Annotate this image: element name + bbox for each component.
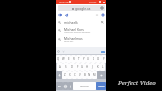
button[interactable]: M	[92, 71, 97, 79]
staticText: F	[77, 65, 79, 69]
staticText: V	[79, 73, 81, 77]
button[interactable]: Emoji suggestions	[57, 50, 60, 53]
staticText: X	[69, 73, 71, 77]
staticText: C	[74, 73, 76, 77]
staticText: D	[71, 65, 74, 69]
staticText: Search	[98, 85, 105, 88]
button[interactable]: F	[75, 63, 80, 71]
staticText: 4:17 PM	[89, 1, 97, 4]
button[interactable]: Emoji	[63, 82, 68, 90]
staticText: Y	[83, 57, 85, 61]
staticText: Michael Kors	[64, 27, 84, 31]
staticText: Q	[57, 57, 60, 61]
button[interactable]: Clipboard	[101, 51, 105, 53]
staticText: K	[97, 65, 99, 69]
button[interactable]: T	[76, 55, 81, 63]
staticText: S	[65, 65, 67, 69]
button[interactable]: D	[69, 63, 75, 71]
staticText: Z	[64, 73, 66, 77]
button[interactable]: Insert suggestion	[101, 21, 104, 24]
button[interactable]: Tabs	[95, 13, 99, 17]
staticText: Feast day	[64, 40, 74, 43]
button[interactable]: W	[61, 55, 66, 63]
button[interactable]: N	[87, 71, 92, 79]
button[interactable]: X	[67, 71, 72, 79]
button[interactable]: More suggestions	[62, 50, 65, 53]
button[interactable]: google.ca	[58, 5, 105, 11]
button[interactable]: J	[90, 63, 95, 71]
staticText: TELUS LTE	[59, 1, 69, 4]
button[interactable]: C	[72, 71, 77, 79]
button[interactable]: E	[66, 55, 71, 63]
button[interactable]: separate	[73, 82, 96, 90]
staticText: J	[92, 65, 93, 69]
staticText: google.ca	[75, 6, 91, 11]
button[interactable]: H	[85, 63, 90, 71]
button[interactable]: B	[82, 71, 87, 79]
button[interactable]: Michaelmas	[56, 35, 106, 44]
button[interactable]: S	[63, 63, 69, 71]
staticText: L	[102, 65, 104, 69]
staticText: O	[97, 57, 100, 61]
staticText: !#1	[58, 85, 61, 88]
staticText: P	[103, 57, 105, 61]
staticText: R	[73, 57, 75, 61]
button[interactable]: U	[86, 55, 91, 63]
staticText: I	[93, 57, 94, 61]
staticText: W	[62, 57, 65, 61]
staticText: American fashion designer	[64, 31, 91, 34]
staticText: H	[86, 65, 89, 69]
staticText: michaelk	[64, 20, 78, 24]
button[interactable]: O	[96, 55, 101, 63]
staticText: N	[88, 73, 91, 77]
button[interactable]: Z	[62, 71, 67, 79]
button[interactable]: Reload page	[100, 6, 104, 10]
button[interactable]: P	[101, 55, 106, 63]
button[interactable]: Search	[96, 82, 106, 90]
button[interactable]: Voice input	[68, 82, 73, 90]
button[interactable]: K	[95, 63, 100, 71]
button[interactable]: I	[91, 55, 96, 63]
staticText: G	[81, 65, 84, 69]
button[interactable]: A	[57, 63, 63, 71]
staticText: Perfect Video	[118, 79, 156, 87]
button[interactable]: michaelk	[56, 18, 106, 26]
button[interactable]: Shift	[56, 71, 62, 79]
button[interactable]: L	[100, 63, 105, 71]
button[interactable]: Backspace	[97, 71, 106, 79]
staticText: M	[93, 73, 96, 77]
button[interactable]: History	[101, 13, 105, 17]
staticText: B	[84, 73, 86, 77]
staticText: Michaelmas	[64, 36, 83, 40]
button[interactable]: Y	[81, 55, 86, 63]
button[interactable]: Q	[56, 55, 61, 63]
button[interactable]: Bookmarks	[65, 13, 69, 17]
button[interactable]: Back	[58, 13, 62, 17]
staticText: U	[87, 57, 90, 61]
button[interactable]: Michael Kors	[56, 26, 106, 35]
button[interactable]: G	[80, 63, 85, 71]
staticText: A	[59, 65, 61, 69]
staticText: separate	[80, 85, 89, 88]
staticText: E	[68, 57, 70, 61]
button[interactable]: R	[71, 55, 76, 63]
button[interactable]: V	[77, 71, 82, 79]
button[interactable]: !#1	[56, 82, 63, 90]
staticText: T	[78, 57, 80, 61]
